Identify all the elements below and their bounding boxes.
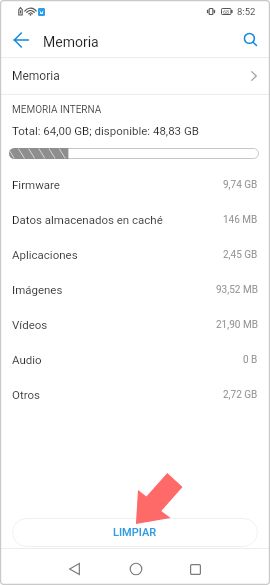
- button[interactable]: LIMPIAR: [12, 518, 258, 547]
- staticText: Memoria: [12, 69, 60, 83]
- staticText: 93,52 MB: [216, 284, 258, 296]
- button[interactable]: Aplicaciones: [0, 237, 270, 272]
- staticText: Vídeos: [12, 318, 48, 331]
- button[interactable]: Firmware: [0, 167, 270, 202]
- button[interactable]: Back: [54, 553, 95, 585]
- staticText: Total: 64,00 GB; disponible: 48,83 GB: [12, 124, 199, 137]
- staticText: MEMORIA INTERNA: [12, 104, 102, 116]
- button[interactable]: Audio: [0, 342, 270, 377]
- staticText: Aplicaciones: [12, 248, 78, 261]
- staticText: 2,45 GB: [223, 249, 258, 261]
- staticText: Otros: [12, 388, 40, 401]
- staticText: 9,74 GB: [223, 179, 258, 191]
- button[interactable]: Back: [0, 23, 42, 57]
- staticText: 68: [223, 9, 230, 15]
- button[interactable]: Imágenes: [0, 272, 270, 307]
- staticText: Firmware: [12, 178, 60, 191]
- staticText: LIMPIAR: [113, 526, 157, 539]
- staticText: Imágenes: [12, 283, 63, 296]
- button[interactable]: Datos almacenados en caché: [0, 202, 270, 237]
- staticText: Memoria: [43, 34, 99, 50]
- button[interactable]: Home: [115, 553, 156, 585]
- staticText: 8:52: [237, 6, 256, 17]
- button[interactable]: Search: [232, 23, 270, 57]
- staticText: 0 B: [243, 354, 258, 366]
- staticText: 21,90 MB: [216, 319, 258, 331]
- button[interactable]: Recents: [175, 553, 216, 585]
- button[interactable]: Memoria: [0, 58, 270, 94]
- staticText: 2,72 GB: [223, 389, 258, 401]
- staticText: Datos almacenados en caché: [12, 213, 163, 226]
- staticText: 146 MB: [223, 214, 258, 226]
- button[interactable]: Vídeos: [0, 307, 270, 342]
- button[interactable]: Otros: [0, 377, 270, 412]
- staticText: Audio: [12, 353, 42, 366]
